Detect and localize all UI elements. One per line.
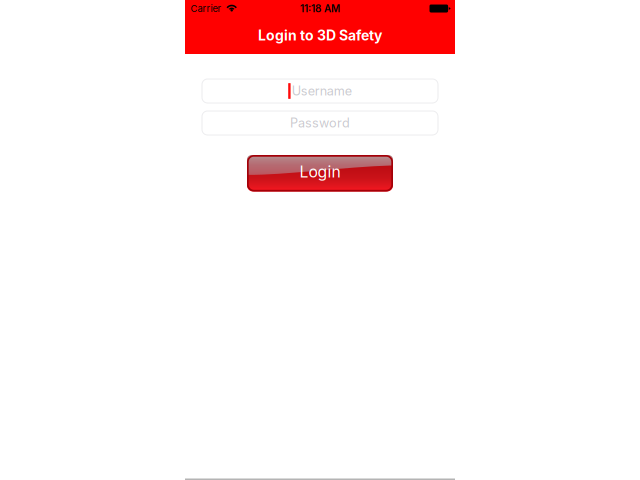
staticText: Carrier	[190, 3, 221, 14]
button[interactable]: Login	[247, 155, 393, 191]
staticText: 11:18 AM	[300, 2, 340, 15]
staticText: Login	[299, 162, 340, 181]
staticText: Username	[292, 83, 352, 99]
staticText: Password	[290, 115, 350, 131]
staticText: Login to 3D Safety	[258, 27, 382, 44]
button[interactable]: Username	[201, 78, 438, 103]
button[interactable]: Password	[201, 110, 438, 135]
